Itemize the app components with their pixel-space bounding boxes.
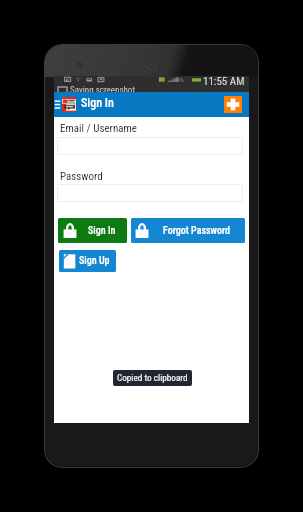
- staticText: Sign In: [81, 96, 114, 110]
- staticText: Email / Username: [60, 122, 137, 135]
- button[interactable]: Open navigation drawer: [54, 97, 62, 112]
- staticText: Saving screenshot...: [70, 85, 143, 96]
- button[interactable]: Text field: [57, 137, 243, 155]
- staticText: Sign In: [88, 225, 116, 237]
- staticText: Password: [60, 170, 103, 183]
- button[interactable]: Text field: [57, 184, 243, 202]
- button[interactable]: Sign Up: [59, 250, 116, 272]
- button[interactable]: Sign In: [58, 218, 127, 243]
- staticText: Copied to clipboard: [117, 372, 188, 383]
- button[interactable]: Add: [224, 96, 242, 113]
- staticText: Forgot Password: [163, 225, 230, 237]
- staticText: 24%: [174, 76, 184, 83]
- button[interactable]: Forgot Password: [131, 218, 245, 243]
- staticText: 11:55 AM: [203, 75, 245, 88]
- staticText: Sign Up: [79, 255, 110, 267]
